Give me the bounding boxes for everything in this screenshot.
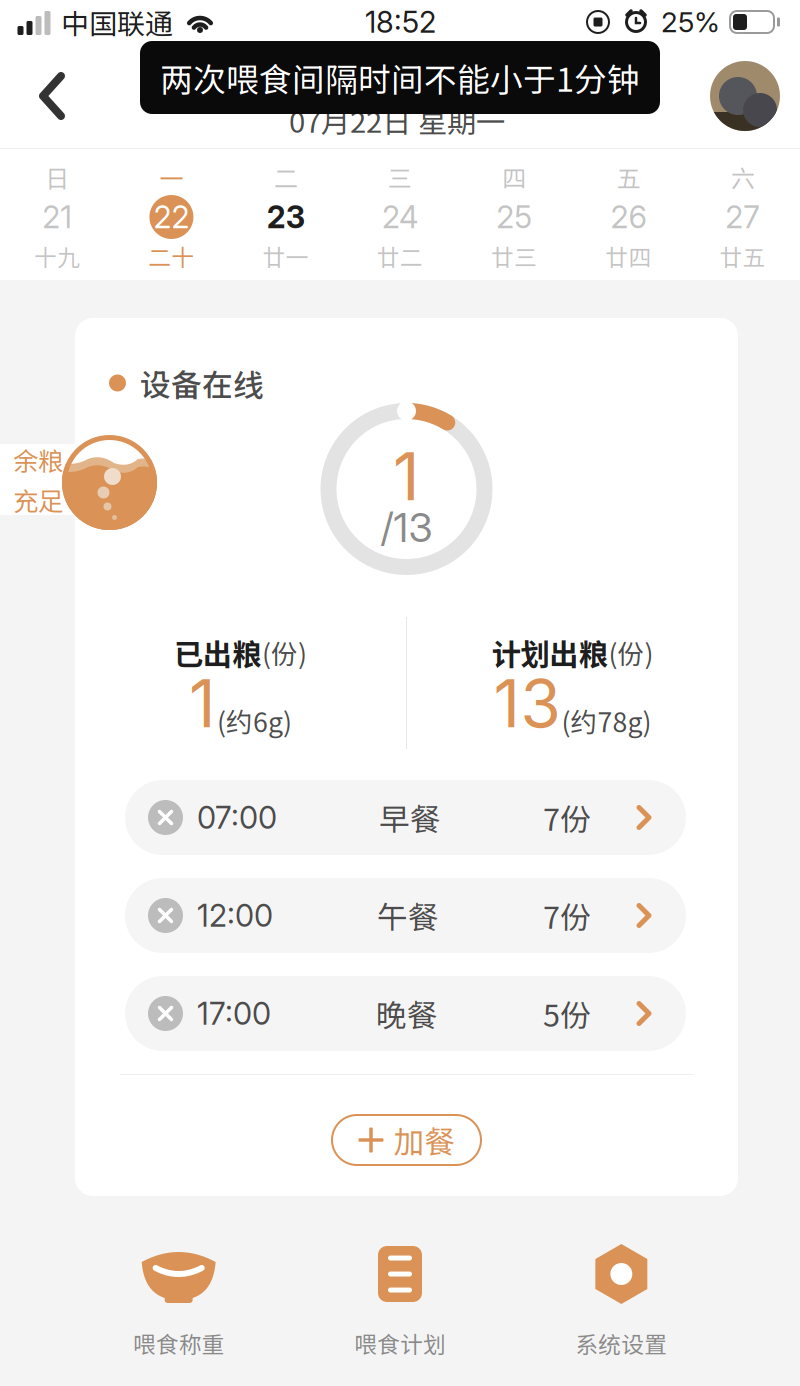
staticText: 25 xyxy=(496,198,532,235)
staticText: 25% xyxy=(661,5,720,39)
staticText: 廿一 xyxy=(263,240,309,272)
staticText: 廿四 xyxy=(606,240,652,272)
staticText: 23 xyxy=(267,198,305,235)
staticText: 一 xyxy=(159,160,183,194)
button[interactable]: Back xyxy=(0,44,104,148)
staticText: 27 xyxy=(725,198,760,235)
staticText: 加餐 xyxy=(393,1118,455,1162)
staticText: 已出粮 xyxy=(174,631,261,674)
staticText: 1 xyxy=(189,664,216,743)
button[interactable]: 日 xyxy=(0,149,114,280)
staticText: 廿三 xyxy=(491,240,537,272)
staticText: 喂食计划 xyxy=(354,1327,446,1359)
staticText: (约6g) xyxy=(217,701,292,740)
staticText: 早餐 xyxy=(379,795,441,840)
button[interactable]: 喂食称重 xyxy=(68,1196,289,1386)
staticText: 07月22日 星期一 xyxy=(289,99,505,141)
staticText: 三 xyxy=(388,160,412,194)
staticText: 7份 xyxy=(543,795,591,840)
staticText: 廿二 xyxy=(377,240,423,272)
staticText: 24 xyxy=(382,198,418,235)
staticText: 充足 xyxy=(13,481,63,518)
staticText: 17:00 xyxy=(197,995,271,1032)
staticText: 7份 xyxy=(543,893,591,938)
staticText: 午餐 xyxy=(377,893,439,938)
staticText: 廿五 xyxy=(720,240,766,272)
button[interactable]: 12:00 xyxy=(125,878,686,953)
button[interactable]: 六 xyxy=(686,149,800,280)
staticText: (约78g) xyxy=(561,701,651,740)
staticText: 余粮 xyxy=(13,441,63,478)
staticText: 07:00 xyxy=(197,799,277,836)
staticText: 六 xyxy=(731,160,755,194)
staticText: 四 xyxy=(502,160,526,194)
staticText: 18:52 xyxy=(365,4,436,40)
staticText: 十九 xyxy=(34,240,80,272)
button[interactable]: 四 xyxy=(457,149,571,280)
staticText: 21 xyxy=(42,198,72,235)
button[interactable]: 一 xyxy=(114,149,229,280)
staticText: 二 xyxy=(274,160,298,194)
staticText: 26 xyxy=(611,198,647,235)
button[interactable]: 三 xyxy=(343,149,457,280)
staticText: 1 xyxy=(393,437,420,516)
staticText: 日 xyxy=(45,160,69,194)
staticText: (份) xyxy=(608,633,653,672)
staticText: 5份 xyxy=(543,991,591,1036)
button[interactable]: 五 xyxy=(571,149,686,280)
staticText: 设备在线 xyxy=(140,361,264,405)
staticText: 晚餐 xyxy=(376,991,438,1036)
staticText: 12:00 xyxy=(197,897,273,934)
button[interactable]: 加餐 xyxy=(331,1114,482,1166)
button[interactable]: 17:00 xyxy=(125,976,686,1051)
staticText: 计划出粮 xyxy=(491,631,607,674)
button[interactable]: 07:00 xyxy=(125,780,686,855)
staticText: (份) xyxy=(262,633,307,672)
staticText: 中国联通 xyxy=(61,2,173,42)
staticText: 两次喂食间隔时间不能小于1分钟 xyxy=(160,54,640,101)
staticText: 五 xyxy=(617,160,641,194)
button[interactable]: Profile xyxy=(690,44,800,148)
button[interactable]: 喂食计划 xyxy=(289,1196,511,1386)
staticText: 二十 xyxy=(148,240,194,272)
button[interactable]: 系统设置 xyxy=(511,1196,732,1386)
button[interactable]: 二 xyxy=(229,149,343,280)
staticText: 喂食称重 xyxy=(133,1327,225,1359)
staticText: /13 xyxy=(380,503,432,552)
staticText: 22 xyxy=(153,198,189,235)
staticText: 系统设置 xyxy=(575,1327,667,1359)
staticText: 13 xyxy=(493,664,560,743)
